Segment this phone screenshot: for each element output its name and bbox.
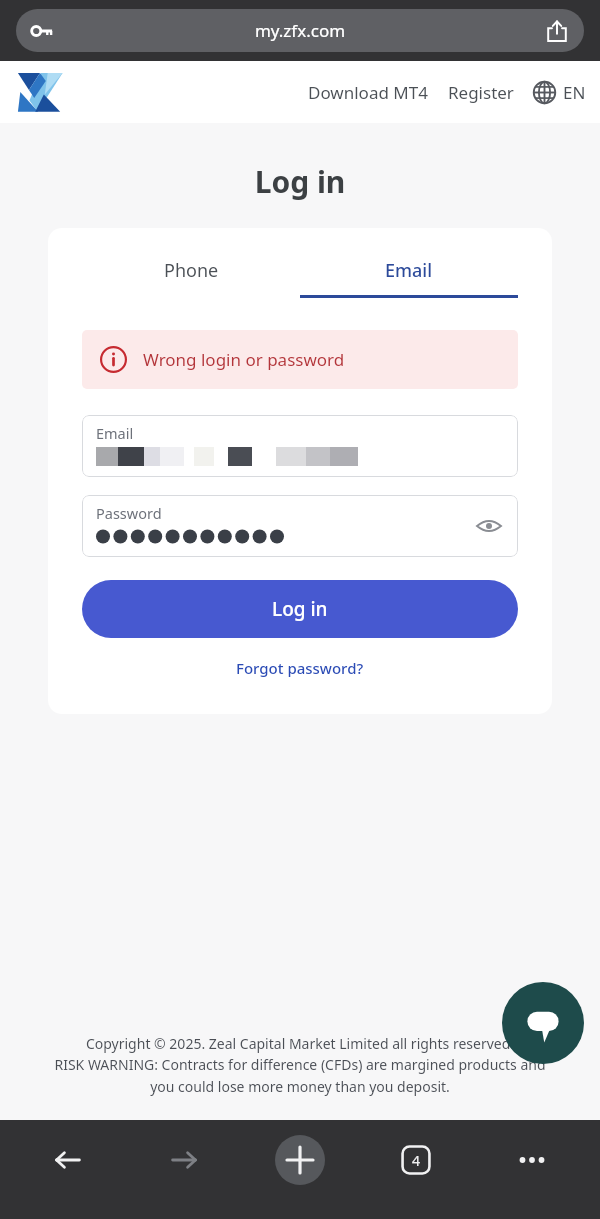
button[interactable]: Show password xyxy=(474,511,504,541)
staticText: Log in xyxy=(272,596,328,622)
button[interactable]: More options xyxy=(474,1120,590,1200)
staticText: Wrong login or password xyxy=(143,348,345,371)
staticText: Download MT4 xyxy=(308,81,428,104)
staticText: Log in xyxy=(0,161,600,202)
button[interactable]: Tabs xyxy=(358,1120,474,1200)
staticText: Email xyxy=(96,423,134,443)
staticText: Register xyxy=(448,81,514,104)
staticText: Copyright © 2025. Zeal Capital Market Li… xyxy=(22,1034,578,1053)
button[interactable]: Saved password xyxy=(16,9,584,52)
button[interactable]: Email xyxy=(82,415,518,477)
button[interactable]: Back xyxy=(10,1120,126,1200)
button[interactable]: ZFX home xyxy=(16,71,64,113)
staticText: RISK WARNING: Contracts for difference (… xyxy=(22,1055,578,1096)
button[interactable]: EN xyxy=(528,72,590,113)
button[interactable]: Open chat xyxy=(502,982,584,1064)
button[interactable]: New tab xyxy=(275,1135,325,1185)
other: Saved password xyxy=(30,19,54,43)
staticText: my.zfx.com xyxy=(54,19,546,42)
staticText: Email xyxy=(385,258,433,283)
button[interactable]: Phone xyxy=(82,258,300,298)
staticText: 4 xyxy=(412,1151,421,1170)
button[interactable]: Register xyxy=(442,73,520,112)
staticText: Password xyxy=(96,503,162,523)
button[interactable]: Forward xyxy=(126,1120,242,1200)
staticText: Forgot password? xyxy=(236,658,364,678)
other: Share xyxy=(546,20,568,42)
button[interactable]: Email xyxy=(300,258,518,298)
button[interactable]: Log in xyxy=(82,580,518,638)
staticText: Phone xyxy=(164,258,219,283)
button[interactable]: Download MT4 xyxy=(302,73,434,112)
staticText: EN xyxy=(563,81,586,104)
button[interactable]: Forgot password? xyxy=(82,654,518,682)
button[interactable]: Password xyxy=(82,495,518,557)
